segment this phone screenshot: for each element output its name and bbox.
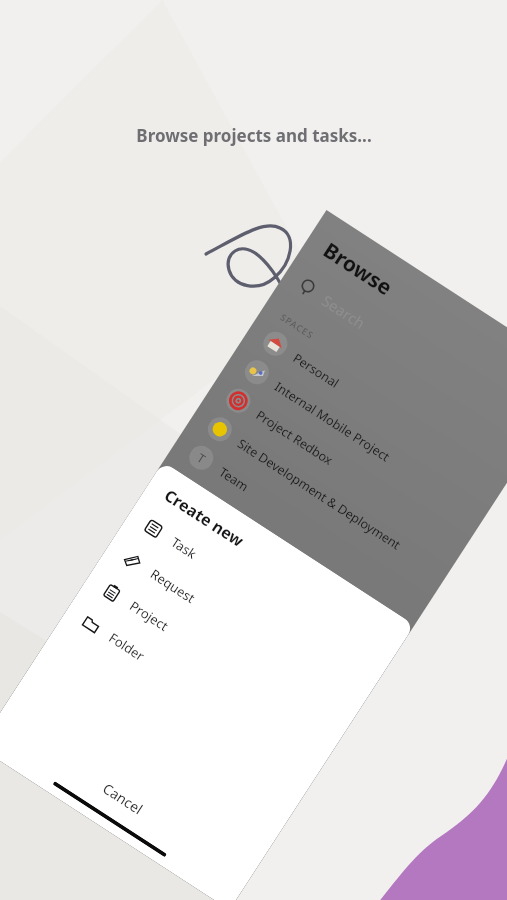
staticText: Personal	[290, 349, 343, 392]
staticText: Create new	[160, 484, 249, 552]
staticText: Request	[147, 565, 199, 607]
staticText: Project Redbox	[253, 406, 337, 469]
button[interactable]: Internal Mobile Project	[238, 351, 493, 533]
staticText: Browse projects and tasks...	[136, 124, 372, 147]
staticText: Project	[126, 597, 172, 635]
staticText: Site Development & Deployment	[234, 435, 404, 554]
button[interactable]: Task	[136, 508, 392, 692]
button[interactable]: Site Development & Deployment	[200, 408, 455, 590]
staticText: Shared with me	[177, 519, 263, 584]
button[interactable]: Explore spaces	[163, 465, 418, 648]
staticText: Folder	[106, 628, 148, 665]
button[interactable]: T	[182, 437, 437, 619]
staticText: Cancel	[99, 779, 147, 819]
button[interactable]: Search	[291, 269, 507, 441]
button[interactable]: Folder	[74, 603, 330, 788]
staticText: T	[194, 449, 209, 467]
button[interactable]: Personal	[256, 323, 507, 505]
staticText: Explore spaces	[195, 491, 278, 553]
staticText: Browse	[318, 236, 398, 302]
staticText: Search	[318, 290, 369, 333]
staticText: Task	[168, 533, 200, 563]
other: Search	[295, 276, 320, 301]
button[interactable]: Request	[116, 539, 371, 724]
staticText: Internal Mobile Project	[271, 378, 394, 466]
button[interactable]: Project	[95, 571, 350, 756]
staticText: SPACES	[278, 311, 317, 341]
button[interactable]: Shared with me	[145, 494, 400, 676]
staticText: Team	[216, 464, 252, 495]
button[interactable]: Cancel	[0, 697, 262, 899]
button[interactable]: Project Redbox	[219, 380, 474, 562]
